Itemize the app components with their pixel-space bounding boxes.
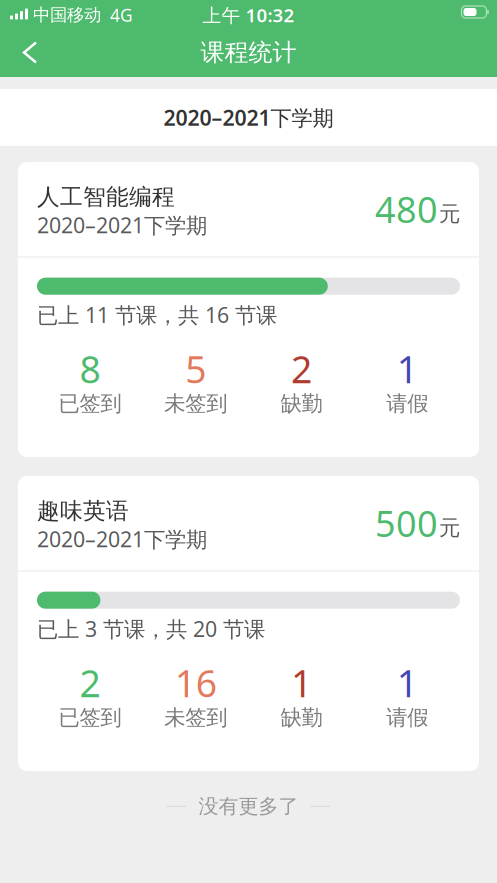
staticText: 上午 10:32 bbox=[202, 3, 294, 27]
button[interactable]: 2020–2021下学期 bbox=[0, 89, 497, 146]
staticText: 人工智能编程 bbox=[37, 183, 175, 211]
staticText: 2020–2021下学期 bbox=[163, 103, 333, 132]
staticText: 中国移动 bbox=[33, 4, 101, 26]
staticText: 4G bbox=[110, 3, 133, 26]
staticText: 8 bbox=[79, 344, 100, 394]
staticText: 趣味英语 bbox=[37, 497, 129, 525]
staticText: 元 bbox=[439, 515, 460, 541]
staticText: 1 bbox=[397, 658, 418, 708]
staticText: 没有更多了 bbox=[198, 794, 298, 819]
staticText: 缺勤 bbox=[280, 391, 322, 417]
staticText: 500 bbox=[375, 499, 438, 547]
staticText: 已上 3 节课，共 20 节课 bbox=[37, 615, 265, 643]
staticText: 请假 bbox=[386, 705, 428, 731]
staticText: 请假 bbox=[386, 391, 428, 417]
staticText: 480 bbox=[375, 185, 438, 233]
staticText: 未签到 bbox=[164, 705, 227, 731]
staticText: 已签到 bbox=[58, 705, 121, 731]
staticText: 未签到 bbox=[164, 391, 227, 417]
button[interactable]: Back bbox=[0, 33, 38, 75]
staticText: 已上 11 节课，共 16 节课 bbox=[37, 301, 277, 329]
button[interactable]: 人工智能编程 bbox=[18, 162, 479, 457]
staticText: 1 bbox=[397, 344, 418, 394]
staticText: 2020–2021下学期 bbox=[37, 211, 207, 239]
staticText: 课程统计 bbox=[200, 38, 296, 67]
button[interactable]: 趣味英语 bbox=[18, 476, 479, 771]
staticText: 元 bbox=[439, 201, 460, 227]
staticText: 缺勤 bbox=[280, 705, 322, 731]
staticText: 16 bbox=[175, 658, 217, 708]
staticText: 2020–2021下学期 bbox=[37, 525, 207, 553]
staticText: 2 bbox=[79, 658, 100, 708]
staticText: 已签到 bbox=[58, 391, 121, 417]
staticText: 5 bbox=[185, 344, 206, 394]
staticText: 2 bbox=[291, 344, 312, 394]
staticText: 1 bbox=[291, 658, 312, 708]
